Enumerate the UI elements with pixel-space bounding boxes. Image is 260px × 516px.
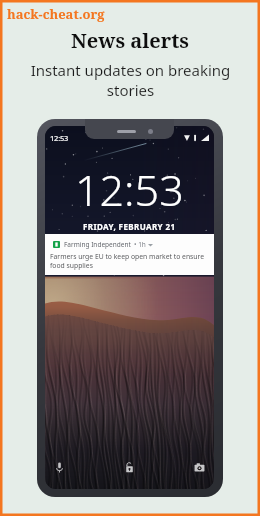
staticText: 12:53 — [75, 160, 184, 219]
staticText: Farming Independent — [64, 240, 131, 249]
staticText: 12:53 — [50, 133, 69, 141]
staticText: • 1h — [134, 240, 146, 249]
button[interactable]: Voice assistant — [54, 462, 65, 473]
button[interactable]: Farming Independent — [45, 234, 214, 275]
button[interactable]: Lock — [124, 462, 135, 473]
staticText: News alerts — [71, 27, 189, 54]
staticText: Instant updates on breaking stories — [28, 60, 233, 100]
staticText: FRIDAY, FEBRUARY 21 — [83, 221, 176, 232]
button[interactable]: Camera — [194, 462, 205, 473]
staticText: hack-cheat.org — [7, 5, 105, 23]
staticText: Farmers urge EU to keep open market to e… — [50, 252, 205, 270]
